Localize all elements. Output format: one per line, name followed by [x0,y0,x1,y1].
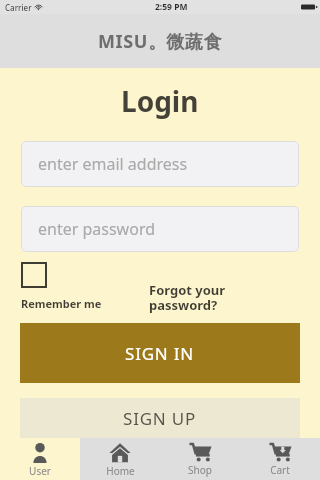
button[interactable]: SIGN UP [20,398,300,438]
button[interactable]: Cart [240,438,320,480]
button[interactable]: enter password [21,206,299,252]
staticText: SIGN UP [123,407,197,430]
staticText: enter email address [38,153,188,175]
staticText: Carrier [5,2,32,13]
button[interactable]: Remember me checkbox [21,262,47,288]
staticText: Forgot your password? [149,281,226,314]
staticText: Home [106,464,135,478]
button[interactable]: User [0,438,80,480]
staticText: SIGN IN [125,342,195,365]
button[interactable]: Shop [160,438,240,480]
staticText: 2:59 PM [155,1,188,13]
button[interactable]: Forgot your password? [149,281,259,314]
staticText: Cart [270,463,290,477]
staticText: Shop [188,463,212,477]
staticText: User [29,464,51,478]
button[interactable]: Home [80,438,160,480]
button[interactable]: enter email address [21,141,299,187]
staticText: MISU。微蔬食 [98,29,223,54]
staticText: Login [121,82,199,120]
staticText: Remember me [21,296,102,311]
staticText: enter password [38,218,156,240]
button[interactable]: SIGN IN [20,323,300,383]
